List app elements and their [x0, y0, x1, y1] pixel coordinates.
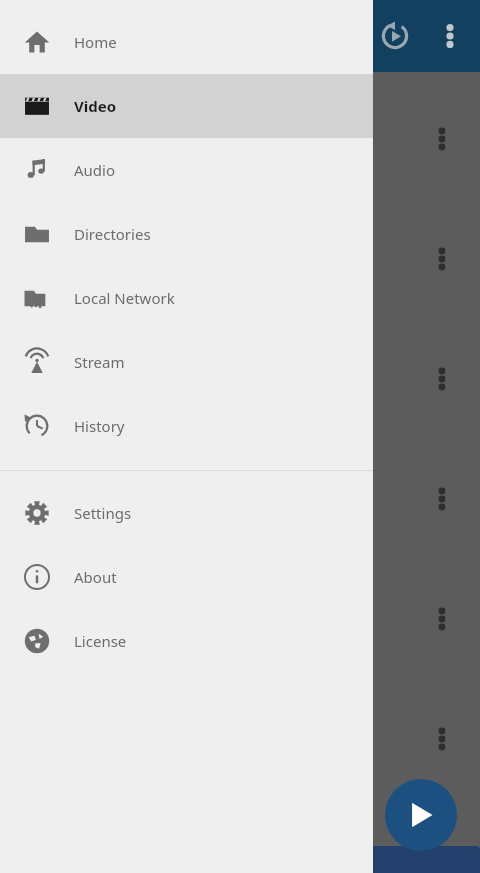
- button[interactable]: Resume playback: [371, 12, 419, 60]
- staticText: About: [74, 567, 117, 587]
- button[interactable]: Item options: [418, 595, 466, 643]
- button[interactable]: License: [0, 609, 373, 673]
- staticText: Directories: [74, 224, 151, 244]
- button[interactable]: Video: [0, 74, 373, 138]
- staticText: Stream: [74, 352, 125, 372]
- button[interactable]: [0, 846, 480, 873]
- button[interactable]: Play: [385, 779, 457, 851]
- button[interactable]: Item options: [418, 475, 466, 523]
- button[interactable]: Item options: [418, 715, 466, 763]
- staticText: Audio: [74, 160, 116, 180]
- staticText: Local Network: [74, 288, 175, 308]
- button[interactable]: More options: [426, 12, 474, 60]
- staticText: Video: [74, 96, 117, 116]
- button[interactable]: Item options: [418, 235, 466, 283]
- button[interactable]: Stream: [0, 330, 373, 394]
- staticText: Home: [74, 32, 117, 52]
- button[interactable]: Settings: [0, 481, 373, 545]
- button[interactable]: Item options: [418, 355, 466, 403]
- staticText: History: [74, 416, 125, 436]
- button[interactable]: Local Network: [0, 266, 373, 330]
- staticText: License: [74, 631, 127, 651]
- button[interactable]: Item options: [418, 115, 466, 163]
- button[interactable]: Home: [0, 10, 373, 74]
- button[interactable]: History: [0, 394, 373, 458]
- staticText: Settings: [74, 503, 132, 523]
- button[interactable]: About: [0, 545, 373, 609]
- button[interactable]: Directories: [0, 202, 373, 266]
- button[interactable]: Audio: [0, 138, 373, 202]
